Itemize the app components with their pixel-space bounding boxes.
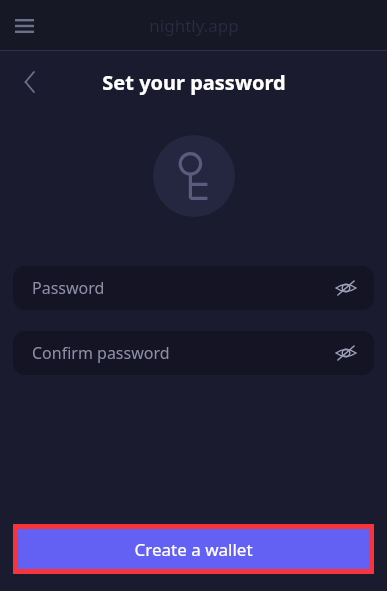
- button[interactable]: Create a wallet: [18, 529, 369, 569]
- staticText: Create a wallet: [134, 538, 253, 561]
- staticText: Password: [32, 277, 332, 299]
- staticText: Set your password: [102, 69, 286, 96]
- staticText: Confirm password: [32, 342, 332, 364]
- button[interactable]: Back: [14, 66, 46, 98]
- staticText: nightly.app: [149, 14, 239, 37]
- button[interactable]: Show Password: [332, 274, 360, 302]
- button[interactable]: Confirm password: [13, 331, 374, 375]
- button[interactable]: Password: [13, 266, 374, 310]
- button[interactable]: Menu: [9, 11, 39, 41]
- button[interactable]: Show Confirm password: [332, 339, 360, 367]
